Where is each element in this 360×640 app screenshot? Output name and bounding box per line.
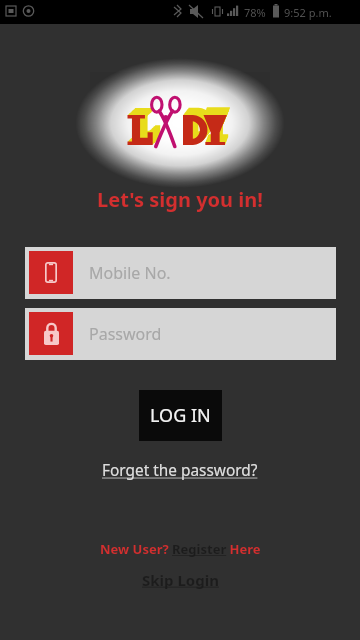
button[interactable]: Skip Login xyxy=(138,568,223,592)
staticText: Mobile No. xyxy=(89,262,171,284)
button[interactable]: LOG IN xyxy=(139,390,222,441)
staticText: Let's sign you in! xyxy=(0,186,360,213)
staticText: 78% xyxy=(244,5,266,20)
staticText: LOG IN xyxy=(150,403,211,428)
button[interactable]: New User? Register Here xyxy=(96,538,265,560)
button[interactable]: Password xyxy=(25,308,336,360)
staticText: 9:52 p.m. xyxy=(284,5,332,20)
button[interactable]: Mobile number xyxy=(25,247,336,299)
button[interactable]: Forget the password? xyxy=(98,458,262,483)
other: Mobile number xyxy=(29,251,73,294)
staticText: Password xyxy=(89,323,162,345)
other: Password xyxy=(29,312,73,355)
